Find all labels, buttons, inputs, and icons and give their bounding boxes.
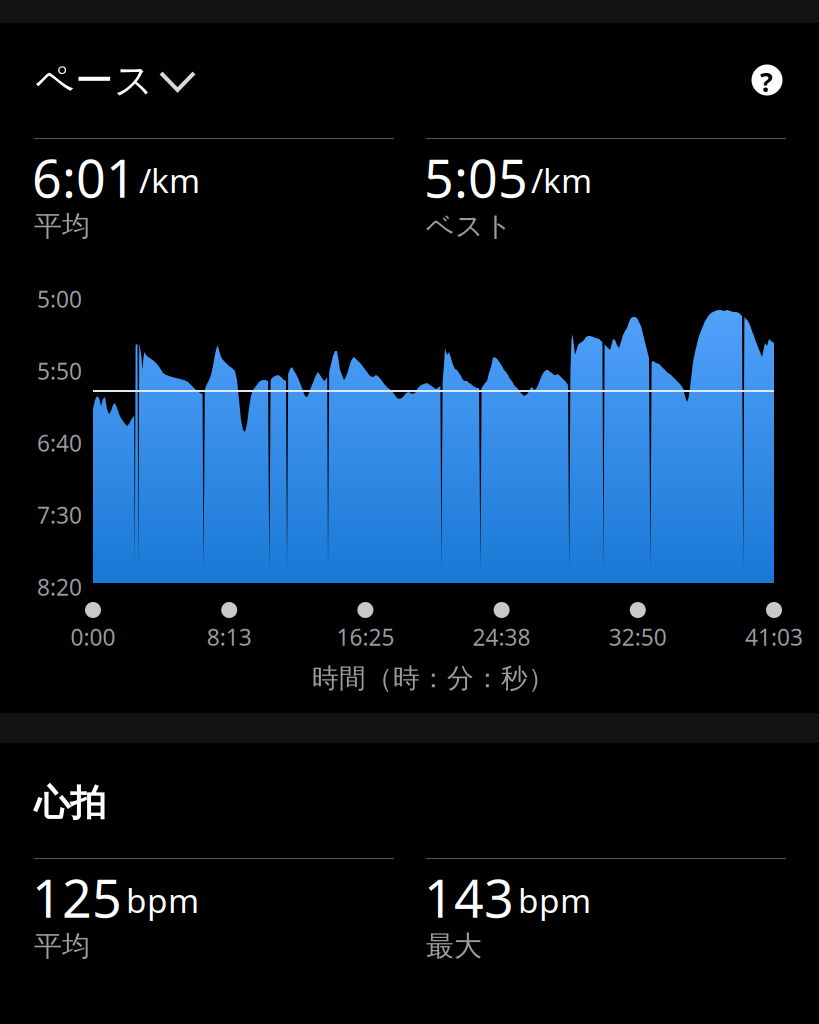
staticText: 6:01 (32, 143, 136, 212)
button[interactable]: Help (0, 0, 819, 1024)
staticText: 5:50 (37, 356, 82, 386)
staticText: 心拍 (34, 781, 106, 825)
staticText: ペース (35, 57, 154, 104)
staticText: ? (760, 64, 773, 99)
staticText: 6:40 (37, 428, 82, 458)
staticText: 41:03 (745, 622, 803, 652)
staticText: 平均 (34, 929, 90, 963)
staticText: 平均 (34, 209, 90, 243)
staticText: 8:20 (37, 572, 82, 602)
staticText: 0:00 (70, 622, 115, 652)
staticText: 7:30 (37, 500, 82, 530)
staticText: 時間（時：分：秒） (312, 662, 555, 695)
staticText: bpm (518, 878, 591, 922)
button[interactable]: ペース (0, 0, 819, 1024)
staticText: 125 (32, 863, 122, 932)
staticText: 32:50 (609, 622, 667, 652)
staticText: bpm (126, 878, 199, 922)
staticText: 5:05 (424, 143, 528, 212)
staticText: 143 (424, 863, 514, 932)
staticText: /km (531, 158, 592, 202)
staticText: 16:25 (336, 622, 394, 652)
staticText: 5:00 (37, 284, 82, 314)
staticText: ベスト (426, 209, 513, 243)
staticText: 8:13 (207, 622, 252, 652)
staticText: 24:38 (473, 622, 531, 652)
staticText: 最大 (426, 929, 482, 963)
staticText: /km (139, 158, 200, 202)
